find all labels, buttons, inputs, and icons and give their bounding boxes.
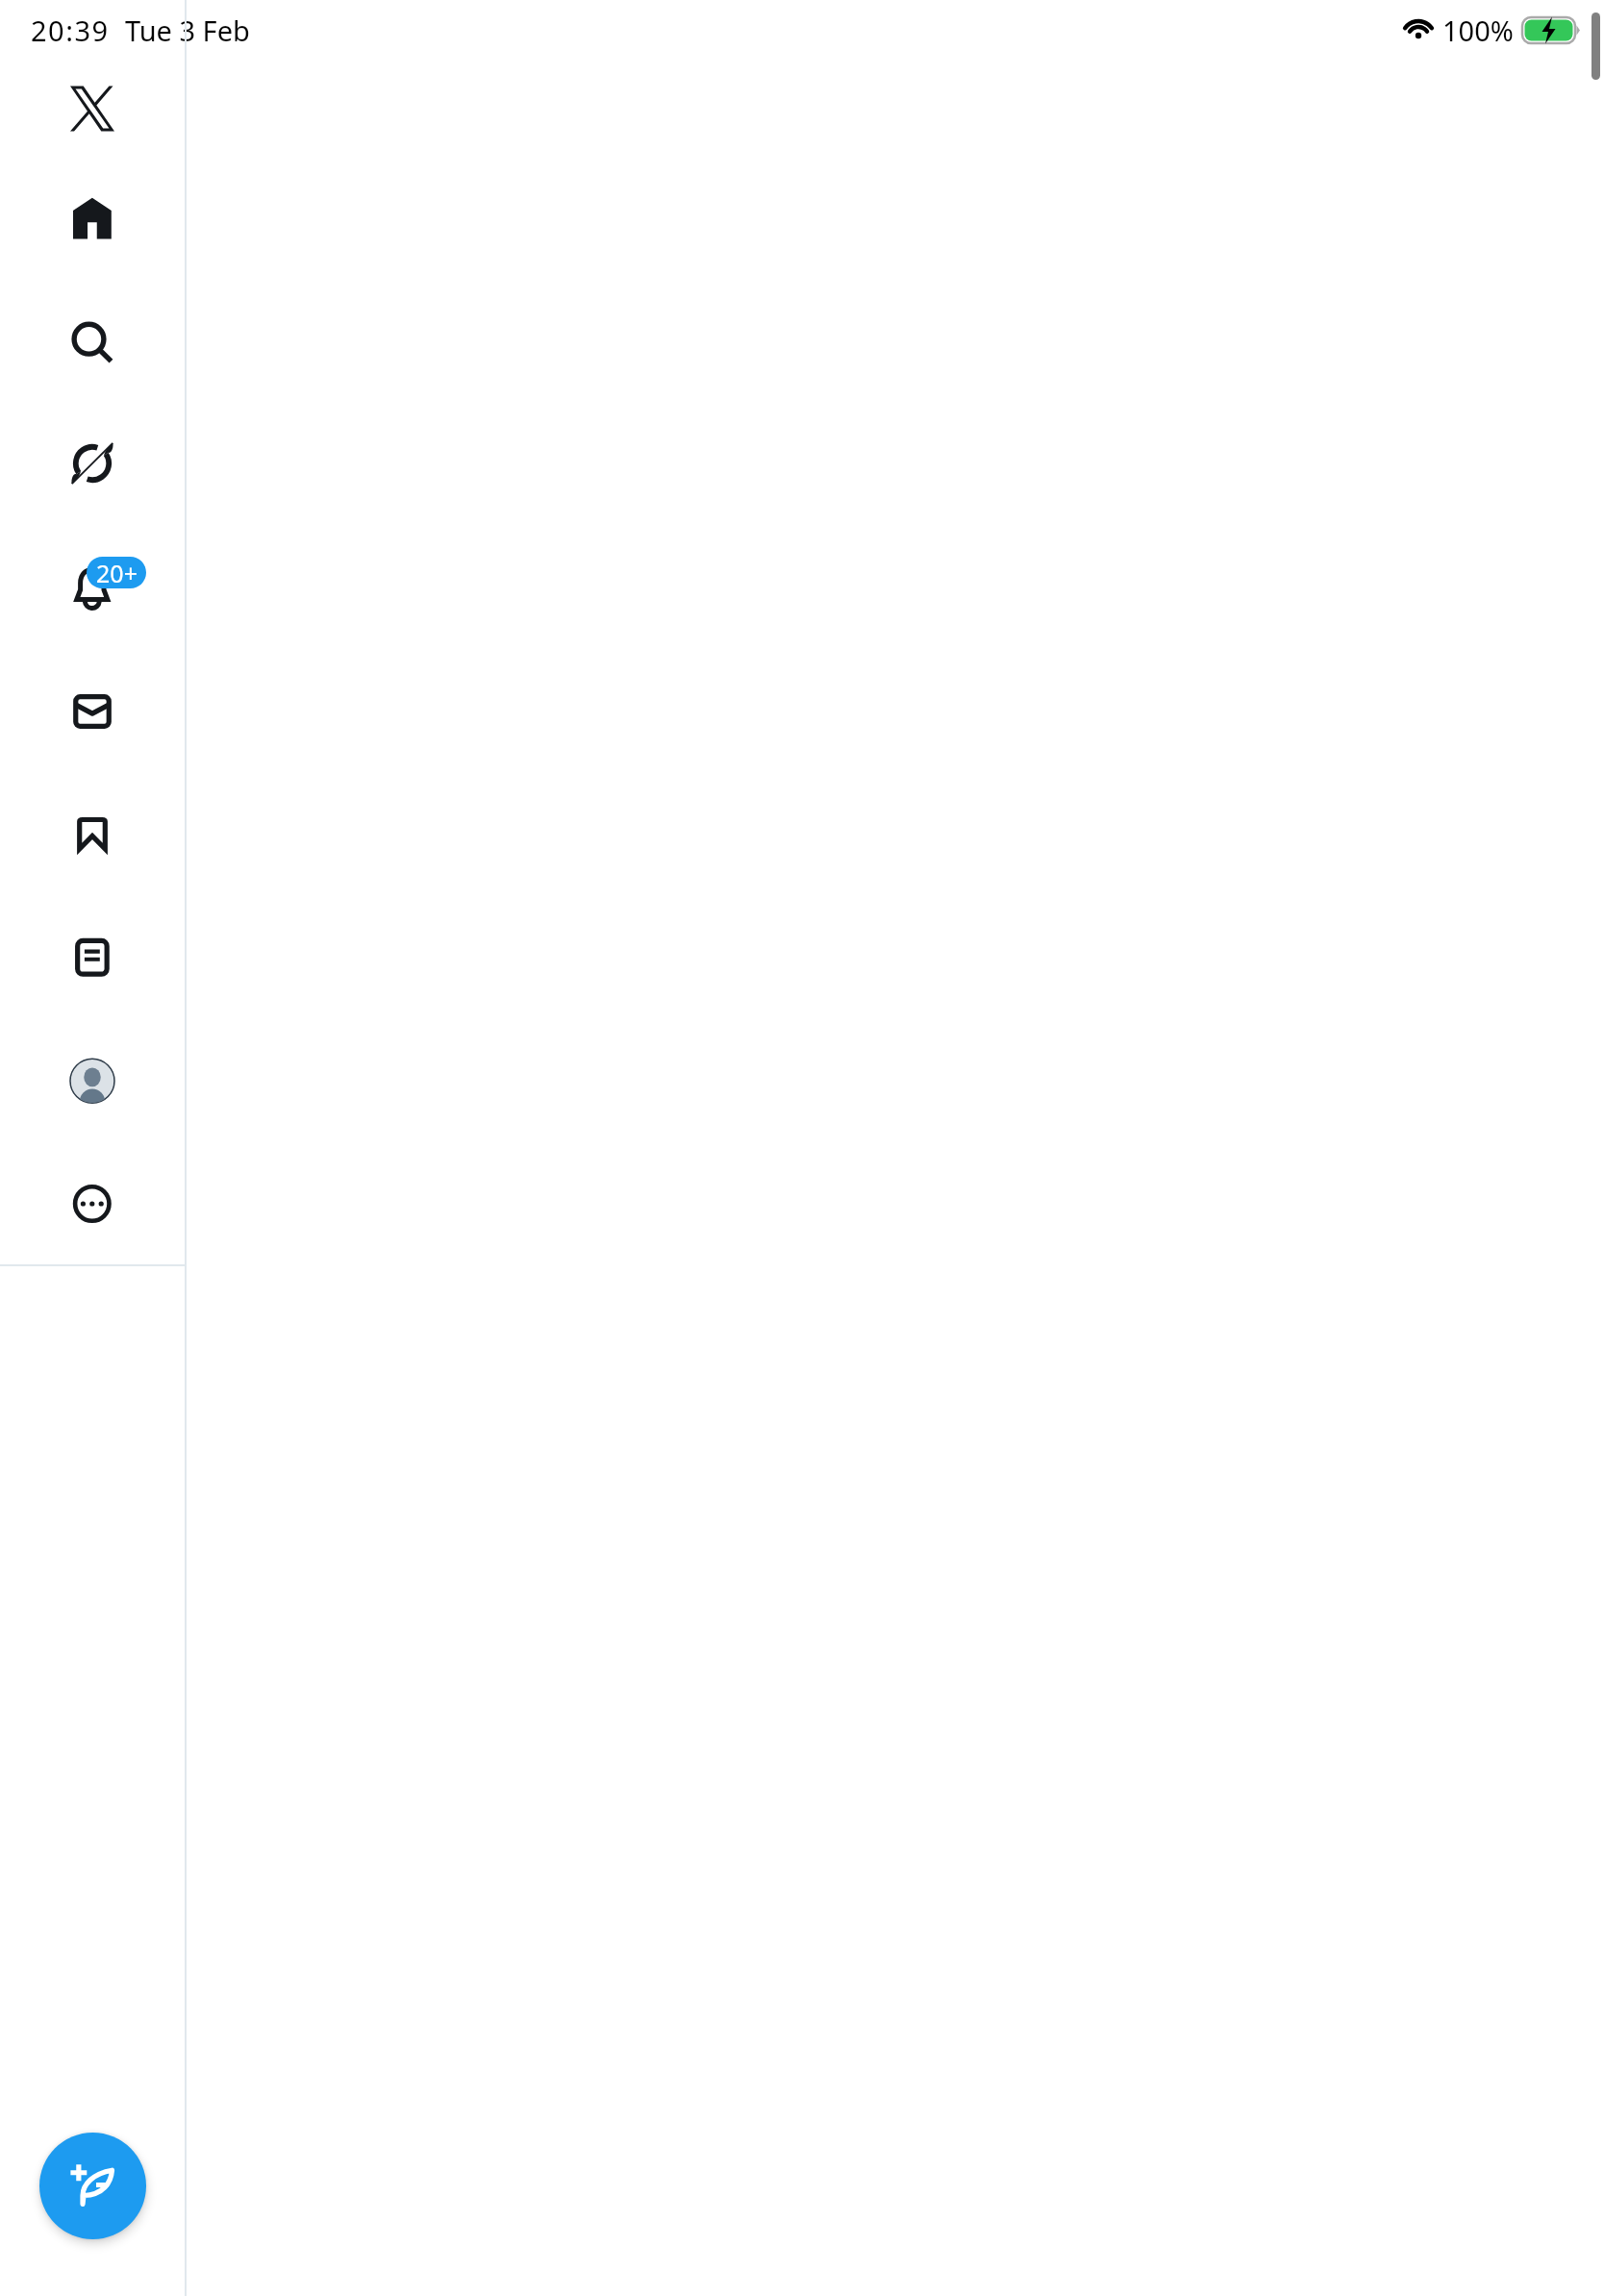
button[interactable]: Jobs [48,913,137,1002]
staticText: 20+ [96,557,138,588]
button[interactable]: 20 plus notifications [87,557,146,588]
staticText: 100% [1442,12,1514,49]
button[interactable]: Messages [48,667,137,756]
button[interactable]: Post [39,2133,146,2239]
button[interactable]: Grok [48,419,137,508]
button[interactable]: Bookmarks [48,790,137,879]
staticText: Tue 3 Feb [125,12,250,49]
staticText: 20:39 [31,12,110,49]
button[interactable]: Home [48,174,137,262]
button[interactable]: Notifications [48,544,137,633]
button[interactable]: More [48,1160,137,1248]
button[interactable]: Search [48,294,137,383]
button[interactable]: Profile [48,1036,137,1124]
button[interactable]: X [48,64,137,153]
